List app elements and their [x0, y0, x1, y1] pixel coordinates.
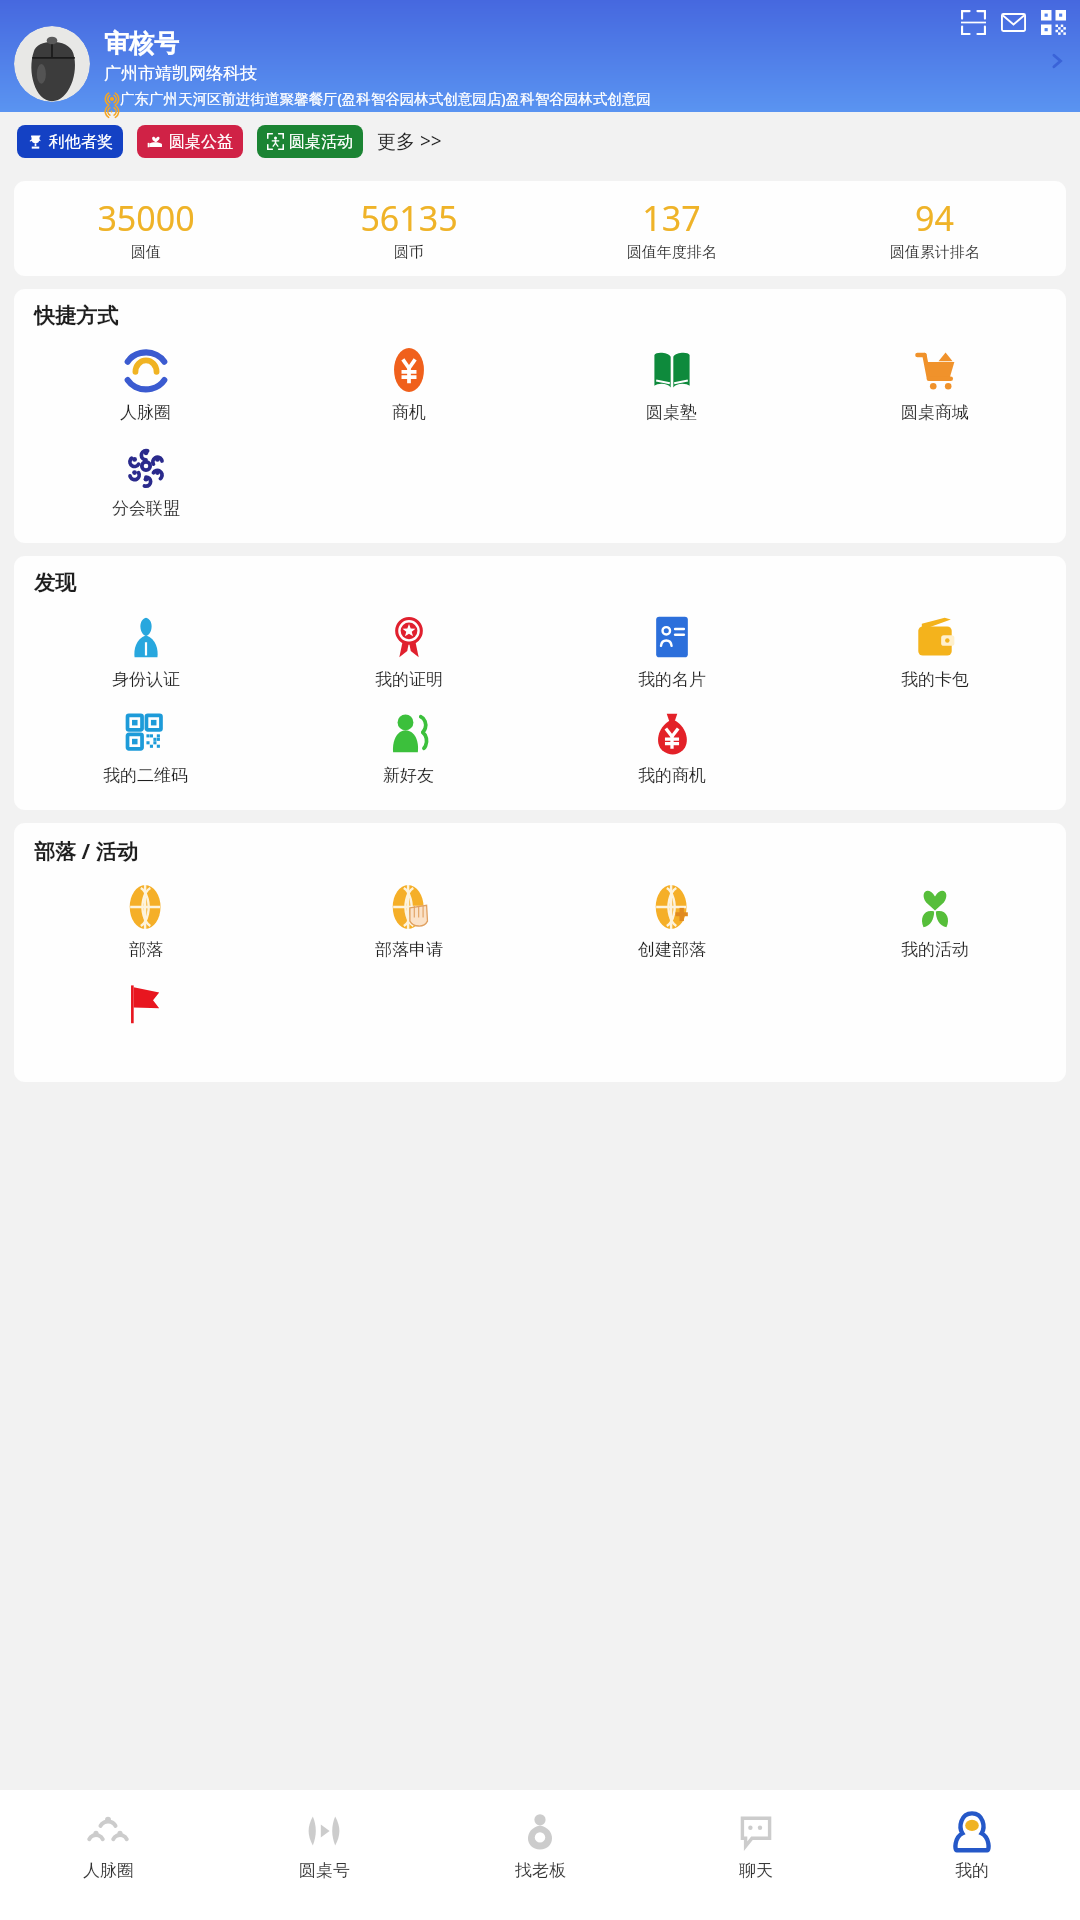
- staticText: 人脉圈: [120, 402, 171, 423]
- staticText: 圆值年度排名: [627, 243, 717, 262]
- staticText: 圆桌活动: [289, 132, 353, 152]
- staticText: 137: [642, 195, 701, 241]
- staticText: 快捷方式: [34, 303, 118, 329]
- button[interactable]: 我的: [864, 1790, 1080, 1920]
- button[interactable]: 137: [540, 195, 803, 262]
- button[interactable]: 我的活动: [803, 872, 1066, 968]
- button[interactable]: 利他者奖: [17, 125, 123, 158]
- button[interactable]: 圆桌塾: [540, 335, 803, 431]
- button[interactable]: 商机: [277, 335, 540, 431]
- staticText: 人脉圈: [83, 1860, 134, 1881]
- staticText: 审核号: [104, 28, 179, 59]
- button[interactable]: 94: [803, 195, 1066, 262]
- staticText: 56135: [360, 195, 458, 241]
- staticText: 我的活动: [901, 939, 969, 960]
- staticText: 分会联盟: [112, 498, 180, 519]
- button[interactable]: 我的证明: [277, 602, 540, 698]
- button[interactable]: 35000: [14, 195, 277, 262]
- button[interactable]: 圆桌商城: [803, 335, 1066, 431]
- staticText: 我的卡包: [901, 669, 969, 690]
- staticText: 圆桌公益: [169, 132, 233, 152]
- staticText: 35000: [97, 195, 195, 241]
- staticText: 我的商机: [638, 765, 706, 786]
- button[interactable]: 部落申请: [277, 872, 540, 968]
- staticText: 94: [915, 195, 954, 241]
- button[interactable]: 我的卡包: [803, 602, 1066, 698]
- button[interactable]: 审核号: [14, 26, 1070, 112]
- button[interactable]: 部落: [14, 872, 277, 968]
- staticText: 圆桌商城: [901, 402, 969, 423]
- staticText: 身份认证: [112, 669, 180, 690]
- button[interactable]: 找老板: [432, 1790, 648, 1920]
- button[interactable]: 56135: [277, 195, 540, 262]
- staticText: 商机: [392, 402, 426, 423]
- staticText: 圆值: [131, 243, 161, 262]
- staticText: 部落: [129, 939, 163, 960]
- staticText: 发现: [34, 570, 76, 596]
- staticText: 我的: [955, 1860, 989, 1881]
- button[interactable]: 我的名片: [540, 602, 803, 698]
- button[interactable]: 人脉圈: [0, 1790, 216, 1920]
- button[interactable]: QR code: [1036, 5, 1070, 39]
- button[interactable]: Scan: [956, 5, 990, 39]
- staticText: 圆币: [394, 243, 424, 262]
- staticText: 找老板: [515, 1860, 566, 1881]
- button[interactable]: 我的商机: [540, 698, 803, 794]
- staticText: 创建部落: [638, 939, 706, 960]
- staticText: 更多 >>: [377, 128, 442, 154]
- button[interactable]: Open profile: [1044, 48, 1070, 74]
- button[interactable]: 人脉圈: [14, 335, 277, 431]
- button[interactable]: 圆桌号: [216, 1790, 432, 1920]
- button[interactable]: 新好友: [277, 698, 540, 794]
- staticText: 聊天: [739, 1860, 773, 1881]
- button[interactable]: 更多 >>: [373, 124, 446, 158]
- button[interactable]: [14, 968, 277, 1066]
- staticText: 广州市靖凯网络科技: [104, 63, 257, 84]
- staticText: 部落申请: [375, 939, 443, 960]
- button[interactable]: 我的二维码: [14, 698, 277, 794]
- staticText: 部落 / 活动: [34, 837, 138, 866]
- staticText: 广东广州天河区前进街道聚馨餐厅(盈科智谷园林式创意园店)盈科智谷园林式创意园: [120, 88, 651, 108]
- staticText: 我的证明: [375, 669, 443, 690]
- staticText: 利他者奖: [49, 132, 113, 152]
- button[interactable]: 圆桌活动: [257, 125, 363, 158]
- staticText: 圆桌塾: [646, 402, 697, 423]
- staticText: 圆值累计排名: [890, 243, 980, 262]
- staticText: 我的二维码: [103, 765, 188, 786]
- staticText: 我的名片: [638, 669, 706, 690]
- staticText: 新好友: [383, 765, 434, 786]
- button[interactable]: 圆桌公益: [137, 125, 243, 158]
- button[interactable]: Messages: [996, 5, 1030, 39]
- staticText: 圆桌号: [299, 1860, 350, 1881]
- button[interactable]: 聊天: [648, 1790, 864, 1920]
- button[interactable]: 创建部落: [540, 872, 803, 968]
- button[interactable]: 身份认证: [14, 602, 277, 698]
- button[interactable]: 分会联盟: [14, 431, 277, 527]
